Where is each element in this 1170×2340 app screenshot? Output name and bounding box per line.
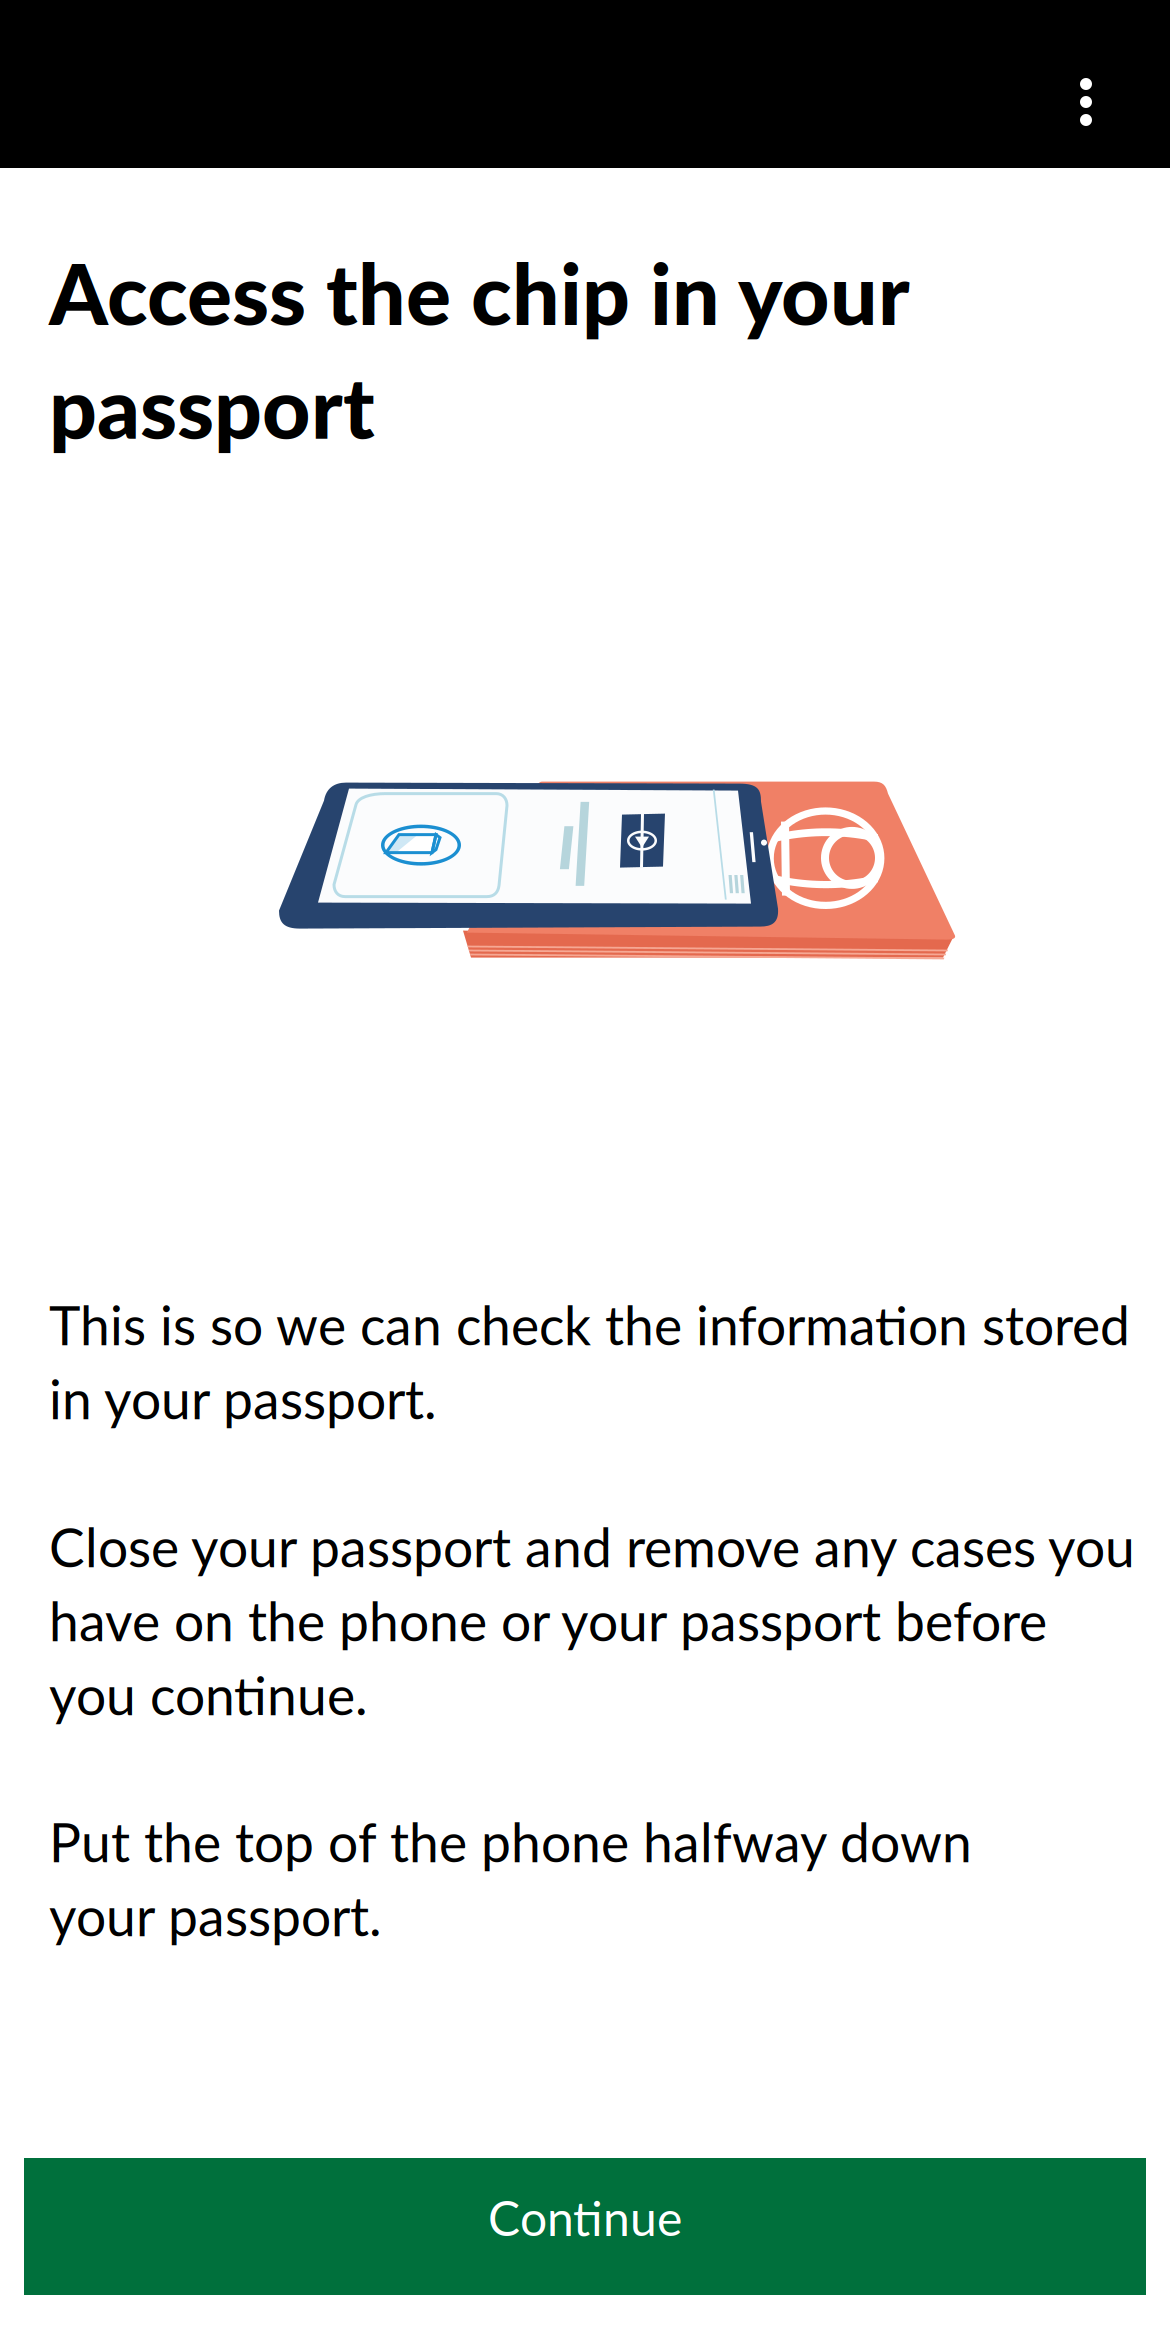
button[interactable]: More options <box>1038 0 1170 186</box>
staticText: Close your passport and remove any cases… <box>49 1515 1135 1727</box>
staticText: Put the top of the phone halfway down yo… <box>49 1810 972 1948</box>
button[interactable]: Continue <box>24 2158 1146 2295</box>
staticText: Continue <box>488 2189 682 2246</box>
staticText: Access the chip in your passport <box>49 242 908 457</box>
staticText: This is so we can check the information … <box>49 1293 1130 1431</box>
